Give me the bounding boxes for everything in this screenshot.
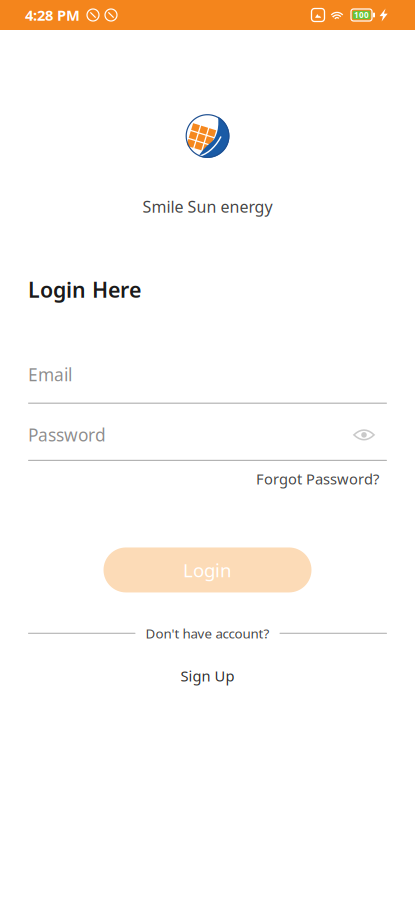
staticText: Forgot Password? [256, 469, 379, 488]
staticText: Email [28, 363, 72, 386]
staticText: Don't have account? [145, 624, 269, 642]
button[interactable]: Sign Up [180, 666, 234, 686]
staticText: Login [183, 558, 232, 582]
staticText: Password [28, 423, 106, 446]
staticText: Login Here [28, 275, 141, 303]
button[interactable]: Login [103, 547, 311, 592]
staticText: Sign Up [180, 666, 234, 686]
staticText: Smile Sun energy [142, 196, 272, 217]
button[interactable]: Email [0, 364, 415, 404]
button[interactable]: Forgot Password? [256, 469, 387, 488]
button[interactable]: Show password [353, 428, 387, 457]
staticText: 4:28 PM [25, 5, 80, 25]
staticText: 100 [354, 10, 369, 20]
button[interactable]: Password [0, 424, 415, 461]
